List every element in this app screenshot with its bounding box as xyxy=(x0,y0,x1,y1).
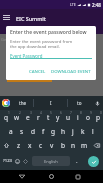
staticText: l xyxy=(92,127,94,136)
staticText: u xyxy=(66,113,71,122)
staticText: p xyxy=(96,113,100,122)
staticText: o xyxy=(86,113,90,122)
staticText: r xyxy=(37,113,40,122)
staticText: LTE xyxy=(70,2,76,7)
staticText: i xyxy=(77,113,79,122)
staticText: . xyxy=(76,157,78,165)
button[interactable]: g xyxy=(48,124,58,138)
staticText: h xyxy=(61,127,66,136)
staticText: 0 xyxy=(100,111,102,115)
button[interactable]: Comma xyxy=(21,152,30,170)
button[interactable]: b xyxy=(57,138,68,152)
staticText: English xyxy=(44,159,58,164)
staticText: Enter the event password below xyxy=(10,29,87,36)
staticText: b xyxy=(61,141,65,150)
button[interactable]: Google search xyxy=(2,99,10,107)
staticText: q xyxy=(4,113,8,122)
button[interactable]: Enter xyxy=(84,152,103,170)
staticText: n xyxy=(71,141,76,150)
button[interactable]: u xyxy=(63,110,73,124)
button[interactable]: a xyxy=(5,124,16,138)
staticText: c xyxy=(39,141,43,150)
staticText: 9 xyxy=(90,111,92,115)
button[interactable]: t xyxy=(43,110,53,124)
staticText: d xyxy=(31,127,35,136)
button[interactable]: p xyxy=(93,110,103,124)
button[interactable]: Home xyxy=(41,170,61,183)
staticText: 2:48 xyxy=(92,2,101,8)
staticText: w xyxy=(14,113,20,122)
button[interactable]: n xyxy=(68,138,79,152)
button[interactable]: o xyxy=(83,110,93,124)
staticText: e xyxy=(26,113,30,122)
button[interactable]: the xyxy=(12,96,33,110)
staticText: t xyxy=(47,113,50,122)
button[interactable]: r xyxy=(33,110,43,124)
staticText: CANCEL xyxy=(29,68,46,73)
staticText: Event Password xyxy=(10,53,43,59)
button[interactable]: ?123 xyxy=(0,152,16,170)
button[interactable]: CANCEL xyxy=(27,65,48,76)
button[interactable]: e xyxy=(22,110,33,124)
button[interactable]: Emoji xyxy=(13,152,22,170)
button[interactable]: i xyxy=(73,110,83,124)
button[interactable]: to xyxy=(68,96,91,110)
staticText: 6 xyxy=(60,111,62,115)
staticText: 4 xyxy=(40,111,42,115)
button[interactable]: Voice input xyxy=(92,96,103,110)
staticText: DOWNLOAD EVENT xyxy=(51,68,91,73)
button[interactable]: k xyxy=(78,124,88,138)
staticText: to xyxy=(77,100,82,106)
staticText: z xyxy=(17,141,21,150)
button[interactable]: w xyxy=(11,110,22,124)
button[interactable]: j xyxy=(68,124,78,138)
button[interactable]: m xyxy=(79,138,90,152)
staticText: s xyxy=(20,127,24,136)
button[interactable]: v xyxy=(46,138,57,152)
button[interactable]: DOWNLOAD EVENT xyxy=(49,65,93,76)
staticText: a xyxy=(9,127,13,136)
button[interactable]: y xyxy=(53,110,63,124)
button[interactable]: x xyxy=(24,138,35,152)
staticText: I xyxy=(50,100,52,106)
staticText: Enter the event password from the app do… xyxy=(10,38,73,49)
staticText: the xyxy=(19,100,27,106)
button[interactable]: z xyxy=(13,138,24,152)
button[interactable]: Period xyxy=(72,152,82,170)
button[interactable]: l xyxy=(88,124,98,138)
button[interactable]: c xyxy=(35,138,46,152)
button[interactable]: s xyxy=(16,124,27,138)
staticText: 7 xyxy=(70,111,72,115)
button[interactable]: Backspace xyxy=(90,138,103,152)
staticText: j xyxy=(72,127,74,136)
staticText: g xyxy=(51,127,55,136)
button[interactable]: Back xyxy=(12,170,32,183)
button[interactable]: I xyxy=(34,96,67,110)
button[interactable]: h xyxy=(58,124,68,138)
staticText: 1 xyxy=(8,111,10,115)
staticText: 8 xyxy=(80,111,82,115)
button[interactable]: Shift xyxy=(0,138,13,152)
staticText: v xyxy=(50,141,54,150)
staticText: 3 xyxy=(30,111,32,115)
button[interactable]: d xyxy=(27,124,38,138)
button[interactable]: q xyxy=(0,110,11,124)
staticText: m xyxy=(81,141,88,150)
staticText: k xyxy=(81,127,85,136)
staticText: 5 xyxy=(50,111,52,115)
staticText: ?123 xyxy=(3,158,13,164)
staticText: Ge xyxy=(1,37,7,42)
button[interactable]: Open navigation menu xyxy=(0,11,13,24)
staticText: y xyxy=(56,113,60,122)
staticText: EIC Summit xyxy=(16,15,46,22)
staticText: 2 xyxy=(19,111,21,115)
staticText: x xyxy=(28,141,32,150)
button[interactable]: f xyxy=(38,124,48,138)
button[interactable]: Recent apps xyxy=(68,170,88,183)
staticText: f xyxy=(42,127,45,136)
button[interactable]: Space xyxy=(32,156,70,166)
